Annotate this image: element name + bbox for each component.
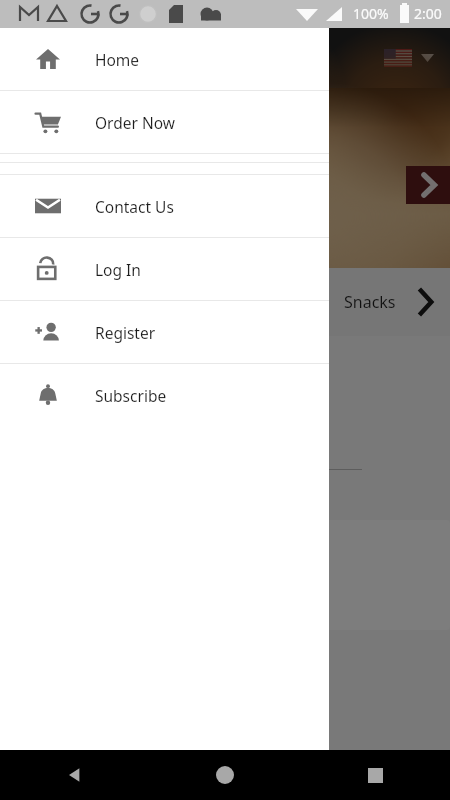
- staticText: Home: [95, 49, 140, 70]
- button[interactable]: Order Now: [0, 91, 329, 153]
- button[interactable]: Log In: [0, 238, 329, 300]
- staticText: 100%: [353, 4, 389, 23]
- button[interactable]: Snacks: [0, 268, 450, 336]
- button[interactable]: Home: [199, 750, 251, 800]
- staticText: Order Now: [95, 112, 175, 133]
- staticText: Register: [95, 322, 156, 343]
- staticText: Snacks: [344, 291, 396, 313]
- staticText: 2:00: [414, 4, 442, 23]
- staticText: Log In: [95, 259, 141, 280]
- button[interactable]: Back: [49, 750, 101, 800]
- staticText: INFO: [30, 362, 67, 382]
- button[interactable]: Contact Us: [0, 175, 329, 237]
- button[interactable]: Next: [406, 166, 450, 204]
- staticText: Subscribe: [95, 385, 167, 406]
- button[interactable]: Register: [0, 301, 329, 363]
- button[interactable]: Recent apps: [349, 750, 401, 800]
- button[interactable]: Home: [0, 28, 329, 90]
- button[interactable]: Change language: [380, 45, 438, 71]
- staticText: Contact Us: [95, 196, 174, 217]
- button[interactable]: [0, 28, 450, 750]
- button[interactable]: Subscribe: [0, 364, 329, 426]
